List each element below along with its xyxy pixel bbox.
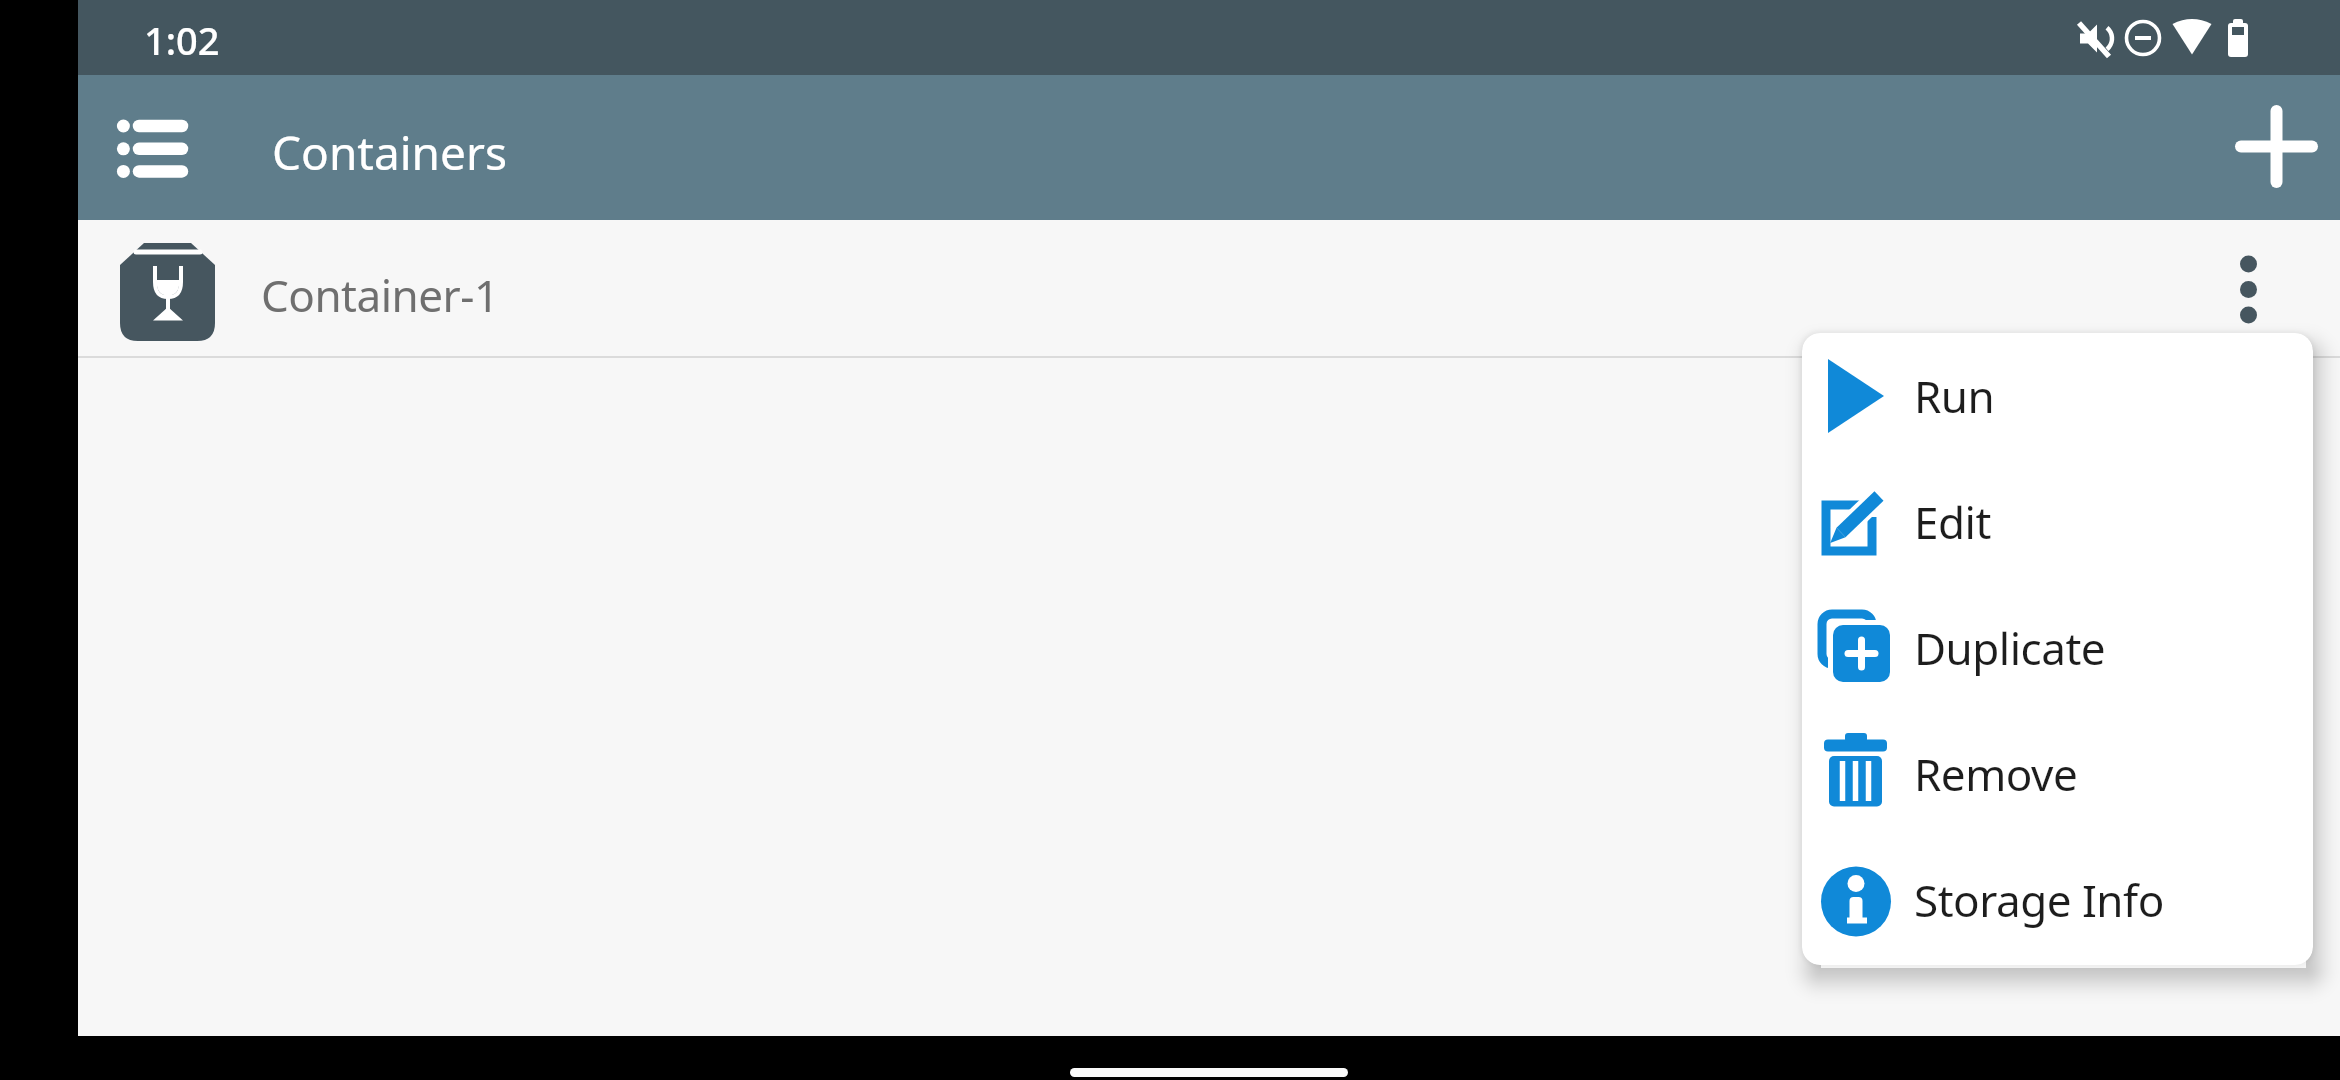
staticText: Edit [1914, 492, 1991, 552]
staticText: 1:02 [144, 14, 220, 66]
staticText: Container-1 [261, 265, 499, 325]
staticText: Containers [272, 121, 508, 184]
button[interactable] [2198, 103, 2288, 193]
button[interactable]: Remove [1802, 711, 2313, 837]
staticText: Remove [1914, 744, 2078, 804]
button[interactable] [102, 105, 192, 190]
staticText: Storage Info [1914, 870, 2164, 930]
staticText: Run [1914, 366, 1995, 426]
button[interactable]: Storage Info [1802, 837, 2313, 963]
button[interactable] [2217, 244, 2267, 334]
staticText: Duplicate [1914, 618, 2106, 678]
button[interactable]: Run [1802, 333, 2313, 459]
button[interactable]: Edit [1802, 459, 2313, 585]
button[interactable]: Duplicate [1802, 585, 2313, 711]
button[interactable]: Container-1 [78, 220, 2340, 356]
